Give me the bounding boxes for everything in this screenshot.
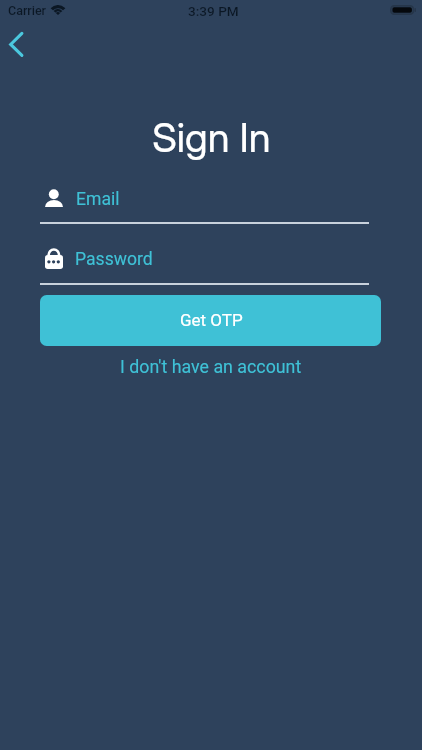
staticText: 3:39 PM (188, 3, 239, 19)
staticText: Carrier (8, 3, 47, 18)
button[interactable]: Back (0, 22, 47, 70)
button[interactable]: I don't have an account (120, 356, 302, 377)
button[interactable]: Get OTP (40, 295, 381, 346)
staticText: Email (76, 189, 120, 210)
staticText: Password (75, 249, 153, 270)
staticText: Get OTP (180, 310, 243, 330)
staticText: Sign In (152, 113, 271, 161)
